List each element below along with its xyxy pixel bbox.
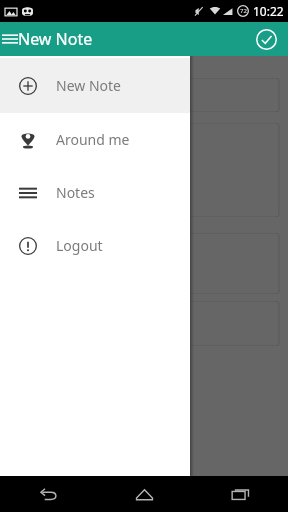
button[interactable]: Save note [250,23,282,55]
staticText: New Note [56,76,121,95]
staticText: New Note [18,28,93,50]
staticText: 10:22 [253,3,284,19]
button[interactable] [8,233,288,294]
button[interactable] [8,78,288,112]
button[interactable] [8,123,288,217]
button[interactable]: Notes [0,166,190,219]
staticText: Around me [56,130,130,149]
button[interactable]: Back [0,476,96,512]
button[interactable]: New Note [0,58,190,113]
button[interactable]: Open navigation drawer [0,22,27,56]
button[interactable] [8,301,288,346]
button[interactable]: Home [96,476,192,512]
button[interactable]: Around me [0,113,190,166]
staticText: Logout [56,236,103,255]
staticText: Notes [56,183,95,202]
button[interactable]: Logout [0,219,190,272]
button[interactable]: Recent apps [192,476,288,512]
staticText: 72 [240,7,247,15]
